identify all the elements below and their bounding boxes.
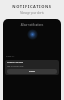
staticText: Install — [29, 70, 35, 73]
staticText: Allow notifications — [3, 23, 61, 27]
button[interactable]: System update — [5, 60, 59, 75]
button[interactable]: Install — [7, 69, 57, 74]
staticText: NOTIFICATIONS — [0, 4, 64, 9]
staticText: TODAY — [6, 54, 15, 57]
staticText: System update — [7, 61, 24, 64]
staticText: Manage your alerts — [0, 11, 64, 15]
staticText: Tap to install now — [7, 65, 24, 68]
